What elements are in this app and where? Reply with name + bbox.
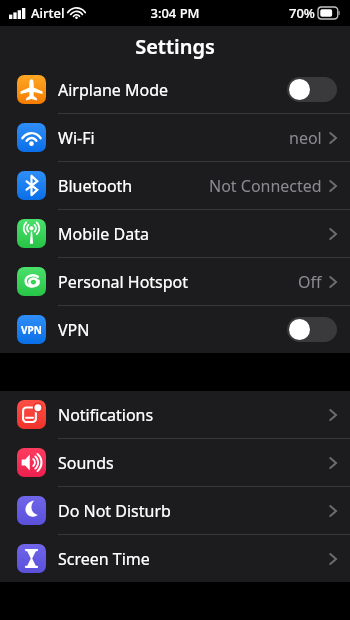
staticText: Sounds [58, 452, 114, 474]
button[interactable]: Screen Time [0, 535, 350, 582]
staticText: Bluetooth [58, 175, 133, 197]
button[interactable]: Personal Hotspot [0, 258, 350, 305]
button[interactable]: Mobile Data [0, 210, 350, 257]
button[interactable]: Sounds [0, 439, 350, 486]
staticText: Do Not Disturb [58, 500, 171, 522]
staticText: Mobile Data [58, 223, 149, 245]
button[interactable]: Airplane Mode [0, 66, 350, 113]
staticText: Settings [135, 33, 215, 60]
button[interactable]: Wi-Fi [0, 114, 350, 161]
staticText: 3:04 PM [150, 4, 200, 22]
button[interactable]: Toggle [287, 317, 337, 342]
staticText: Personal Hotspot [58, 271, 189, 293]
staticText: neol [289, 127, 322, 149]
staticText: 70% [289, 4, 315, 22]
button[interactable]: Bluetooth [0, 162, 350, 209]
button[interactable]: VPN [0, 306, 350, 353]
staticText: Wi-Fi [58, 127, 95, 149]
button[interactable]: Notifications [0, 391, 350, 438]
staticText: Screen Time [58, 548, 150, 570]
button[interactable]: Toggle [287, 77, 337, 102]
staticText: Airplane Mode [58, 79, 169, 101]
staticText: Airtel [31, 4, 65, 22]
staticText: VPN [58, 319, 90, 341]
staticText: Off [298, 271, 322, 293]
staticText: Not Connected [209, 175, 322, 197]
staticText: Notifications [58, 404, 154, 426]
staticText: VPN [21, 323, 42, 337]
button[interactable]: Do Not Disturb [0, 487, 350, 534]
